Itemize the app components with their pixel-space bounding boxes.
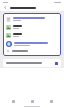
- button[interactable]: [3, 59, 61, 67]
- button[interactable]: Search: [26, 97, 38, 105]
- button[interactable]: Library: [45, 97, 57, 105]
- button[interactable]: Back: [3, 5, 8, 10]
- button[interactable]: Home: [7, 97, 19, 105]
- button[interactable]: [3, 39, 61, 48]
- button[interactable]: [3, 48, 61, 54]
- button[interactable]: [3, 23, 61, 31]
- button[interactable]: [3, 15, 61, 23]
- button[interactable]: [3, 31, 61, 39]
